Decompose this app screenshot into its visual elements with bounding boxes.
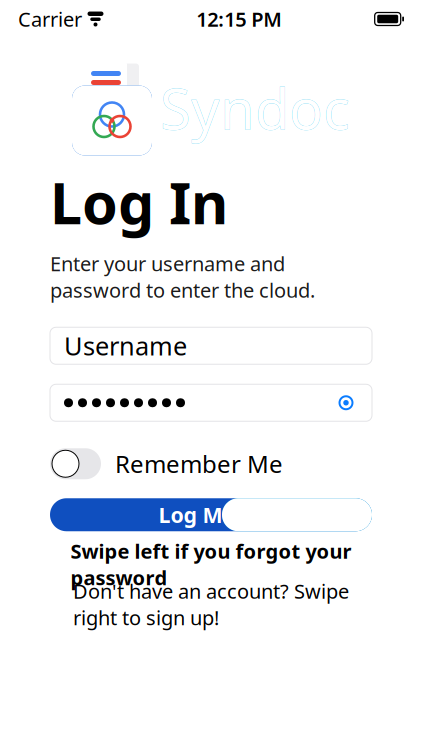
staticText: 12:15 PM	[196, 6, 282, 32]
button[interactable]: Don't have an account? Swipe right to si…	[50, 593, 372, 615]
staticText: Don't have an account? Swipe right to si…	[73, 578, 349, 631]
staticText: Log Me In	[158, 501, 263, 529]
staticText: Username	[64, 329, 187, 362]
button[interactable]: Log Me In	[50, 498, 372, 531]
staticText: Swipe left if you forgot your password	[70, 538, 351, 591]
button[interactable]: Remember Me	[50, 448, 372, 479]
staticText: Syndoc	[160, 71, 350, 145]
staticText: Syndoc	[160, 71, 350, 145]
staticText: Enter your username and password to ente…	[50, 250, 315, 303]
button[interactable]: Username	[50, 327, 372, 364]
staticText: Remember Me	[115, 448, 283, 480]
button[interactable]	[50, 384, 372, 421]
button[interactable]: Swipe left if you forgot your password	[50, 553, 372, 575]
staticText: Log In	[50, 164, 228, 240]
staticText: Carrier	[18, 6, 82, 32]
